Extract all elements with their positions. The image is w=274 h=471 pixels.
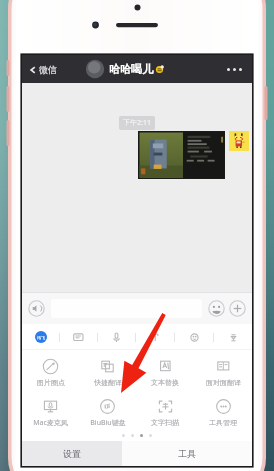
staticText: 文字扫描 (151, 418, 179, 427)
button[interactable]: Input method (22, 324, 59, 350)
staticText: 微信 (39, 64, 57, 75)
staticText: 工具管理 (209, 418, 237, 427)
button[interactable]: Keyboard (60, 324, 97, 350)
button[interactable]: 微信 (27, 60, 59, 79)
staticText: 下午2:11 (123, 118, 151, 128)
staticText: 文本替换 (151, 378, 179, 387)
staticText: Mac麦克风 (33, 418, 68, 428)
button[interactable] (51, 299, 202, 318)
button[interactable]: 快捷翻译 (79, 355, 136, 389)
staticText: 工具 (178, 448, 196, 459)
button[interactable]: Mac麦克风 (22, 395, 79, 430)
button[interactable] (138, 131, 225, 179)
button[interactable]: 面对面翻译 (194, 355, 252, 389)
staticText: 面对面翻译 (206, 378, 241, 387)
button[interactable]: 图片圈点 (22, 355, 79, 389)
staticText: BiuBiu键盘 (90, 418, 126, 428)
button[interactable]: Voice (98, 324, 135, 350)
button[interactable]: BiuBiu键盘 (79, 395, 136, 430)
button[interactable]: 工具 (122, 441, 252, 466)
button[interactable]: 文字扫描 (136, 395, 194, 429)
staticText: 设置 (63, 448, 81, 459)
button[interactable]: Text (136, 324, 174, 350)
button[interactable]: 工具管理 (194, 395, 252, 429)
button[interactable]: More (221, 62, 248, 77)
staticText: 讯飞 (37, 335, 45, 340)
button[interactable]: More actions (229, 300, 246, 317)
button[interactable]: Emoji (175, 324, 213, 350)
button[interactable]: Voice input (28, 300, 45, 317)
button[interactable]: 文本替换 (136, 355, 194, 389)
staticText: 哈哈喝儿 (109, 62, 153, 76)
staticText: 快捷翻译 (94, 378, 122, 387)
button[interactable] (229, 131, 249, 151)
button[interactable]: Emoji (208, 300, 225, 317)
button[interactable]: Collapse keyboard (214, 324, 252, 350)
button[interactable]: 设置 (22, 441, 122, 466)
staticText: 图片圈点 (37, 378, 65, 387)
